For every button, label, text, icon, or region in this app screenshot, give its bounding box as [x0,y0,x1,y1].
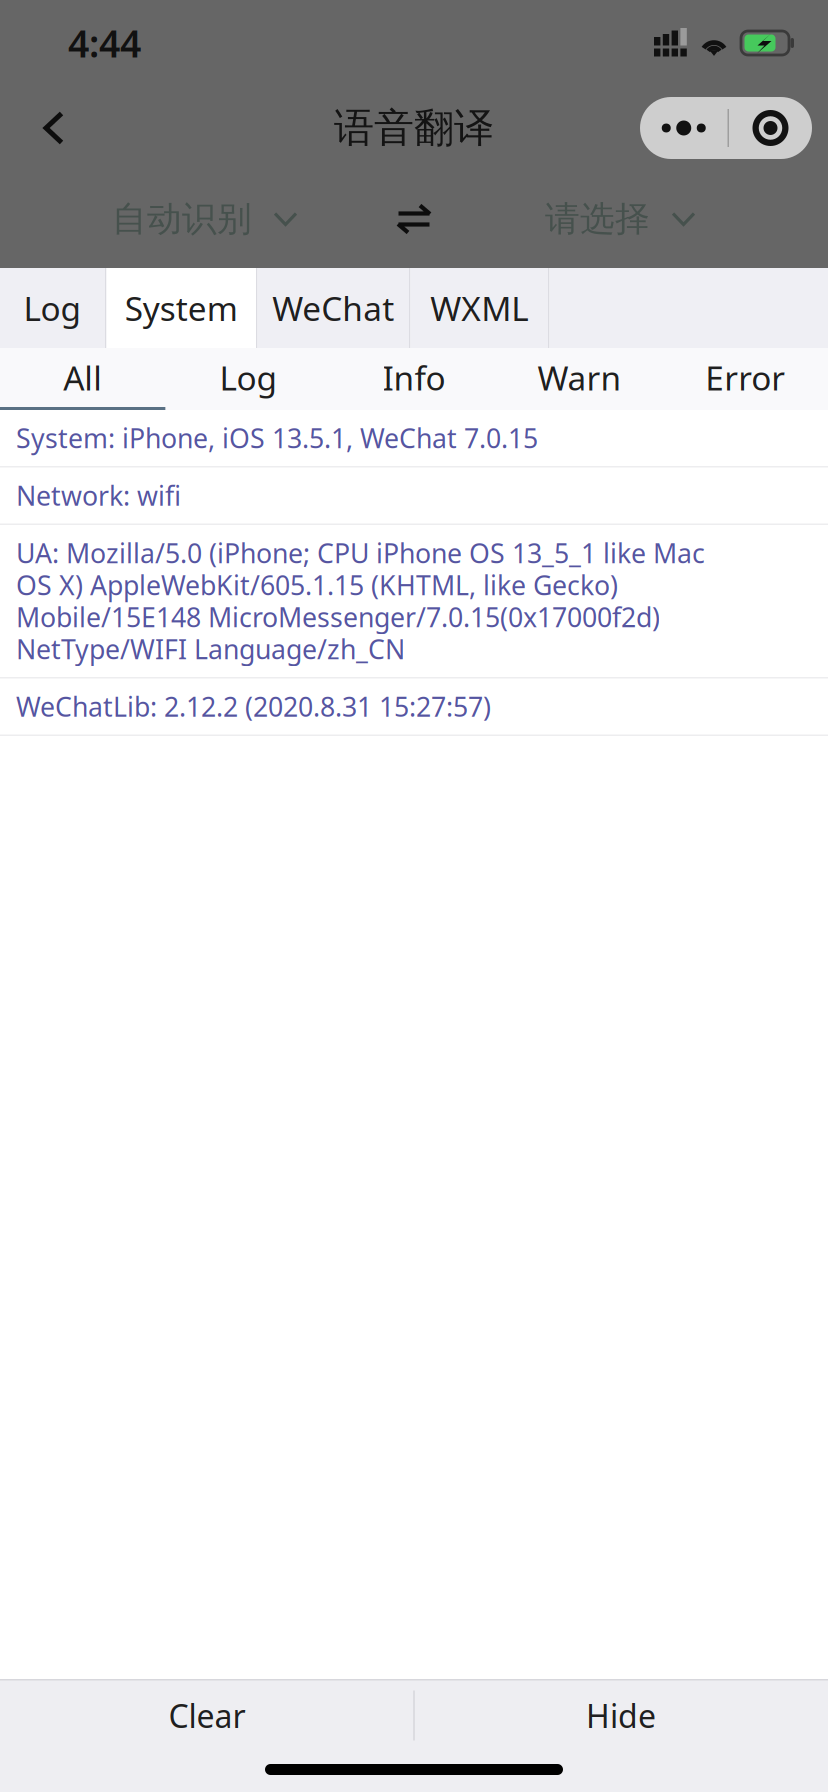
staticText: Mobile/15E148 MicroMessenger/7.0.15(0x17… [16,599,660,635]
button[interactable]: Close mini program [729,97,812,159]
button[interactable]: More [640,97,727,159]
button[interactable]: 请选择 [545,185,696,253]
staticText: System: iPhone, iOS 13.5.1, WeChat 7.0.1… [16,420,538,456]
button[interactable]: Log [0,268,105,348]
button[interactable]: Back [10,87,98,169]
button[interactable]: WeChat [257,268,409,348]
button[interactable]: Log [166,348,331,410]
staticText: Clear [168,1694,245,1737]
button[interactable]: System [106,268,256,348]
button[interactable]: Swap languages [379,185,449,253]
button[interactable]: Warn [497,348,662,410]
staticText: 自动识别 [112,198,252,240]
button[interactable]: Info [331,348,497,410]
staticText: System [125,286,238,330]
button[interactable]: Hide [414,1680,828,1750]
button[interactable]: All [0,348,166,410]
staticText: 请选择 [545,198,650,240]
staticText: All [63,355,102,400]
staticText: Error [705,355,785,400]
staticText: Hide [586,1694,656,1737]
staticText: UA: Mozilla/5.0 (iPhone; CPU iPhone OS 1… [16,535,705,571]
staticText: Info [382,355,445,400]
staticText: Network: wifi [16,478,181,513]
staticText: 语音翻译 [334,103,494,152]
staticText: Log [219,355,277,400]
staticText: OS X) AppleWebKit/605.1.15 (KHTML, like … [16,567,618,603]
staticText: Warn [538,355,622,400]
staticText: WXML [430,286,528,330]
staticText: WeChat [272,286,394,330]
button[interactable]: Error [662,348,828,410]
staticText: Log [23,286,81,330]
staticText: 4:44 [68,18,141,68]
staticText: WeChatLib: 2.12.2 (2020.8.31 15:27:57) [16,689,491,724]
button[interactable]: Clear [0,1680,414,1750]
button[interactable]: 自动识别 [112,185,298,253]
staticText: NetType/WIFI Language/zh_CN [16,631,405,667]
button[interactable]: WXML [410,268,548,348]
